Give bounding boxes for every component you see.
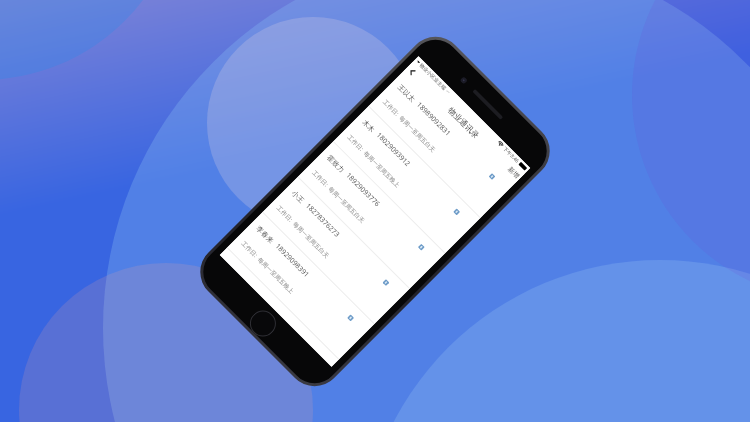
staticText: 下午3:46 xyxy=(501,145,520,164)
staticText: 小王 xyxy=(290,188,306,205)
staticText: 李春来 xyxy=(254,224,276,245)
staticText: 新增 xyxy=(506,165,521,180)
staticText: ··· xyxy=(444,88,452,97)
staticText: 工作日: xyxy=(346,133,365,153)
staticText: 18029093912 xyxy=(374,130,413,169)
button[interactable]: 李春来 xyxy=(227,213,374,360)
staticText: 工作日: xyxy=(275,204,295,224)
button[interactable]: 王以太 xyxy=(368,71,515,218)
staticText: 工作日: xyxy=(381,98,401,118)
staticText: 每周一至周五白天 xyxy=(327,185,366,225)
staticText: 每周一至周五晚上 xyxy=(362,150,401,189)
button[interactable]: 新增 xyxy=(503,162,524,183)
button[interactable]: Back xyxy=(404,63,421,80)
button[interactable]: Call xyxy=(346,314,355,322)
staticText: 王以太 xyxy=(396,82,417,104)
staticText: 霍致力 xyxy=(325,153,346,174)
button[interactable]: 小王 xyxy=(262,177,409,324)
staticText: 每周一至周五晚上 xyxy=(256,256,295,295)
button[interactable]: 木木 xyxy=(333,106,480,254)
button[interactable]: Call xyxy=(452,208,461,216)
staticText: 18989092831 xyxy=(414,100,453,139)
staticText: 工作日: xyxy=(240,239,259,259)
staticText: 物业通讯录 xyxy=(446,105,481,140)
staticText: 物业小区业主端 xyxy=(418,62,447,91)
button[interactable]: 霍致力 xyxy=(298,142,445,289)
staticText: 18278376273 xyxy=(303,201,342,240)
button[interactable]: Call xyxy=(382,278,390,287)
staticText: 工作日: xyxy=(310,169,330,188)
staticText: 18929093776 xyxy=(343,171,382,210)
staticText: 每周一至周五白天 xyxy=(397,114,437,154)
staticText: 每周一至周五白天 xyxy=(291,220,331,260)
staticText: 木木 xyxy=(360,118,377,134)
button[interactable]: Call xyxy=(488,172,496,181)
button[interactable]: Call xyxy=(417,243,426,251)
staticText: 18929098391 xyxy=(273,242,312,280)
